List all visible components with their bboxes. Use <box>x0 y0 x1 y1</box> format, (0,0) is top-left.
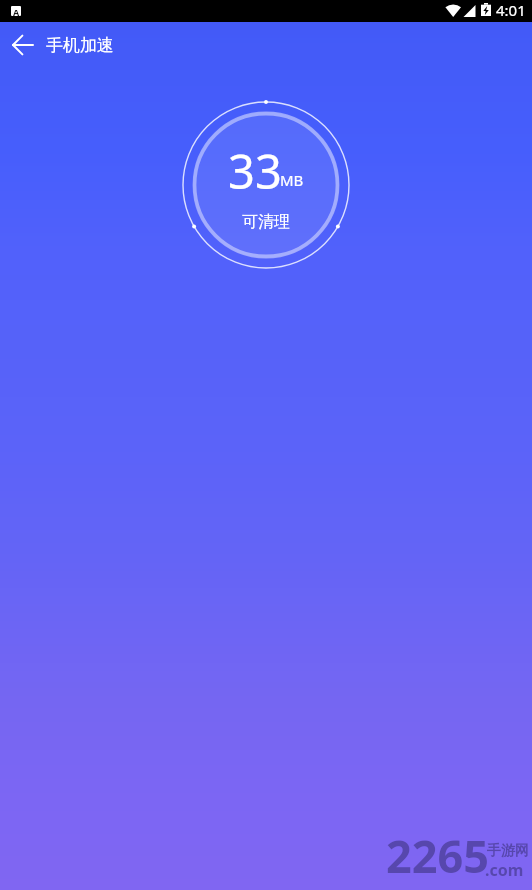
staticText: 可清理 <box>242 212 290 232</box>
button[interactable]: Back <box>0 23 46 69</box>
staticText: .com <box>485 859 524 881</box>
staticText: 4:01 <box>496 0 526 20</box>
staticText: A <box>13 6 20 16</box>
staticText: 手游网 <box>487 842 529 860</box>
staticText: 33 <box>228 139 282 203</box>
button[interactable]: 33 MB 可清理，点击清理 <box>180 99 352 271</box>
staticText: 2265 <box>386 825 489 886</box>
staticText: MB <box>280 170 304 190</box>
staticText: 手机加速 <box>46 35 114 56</box>
